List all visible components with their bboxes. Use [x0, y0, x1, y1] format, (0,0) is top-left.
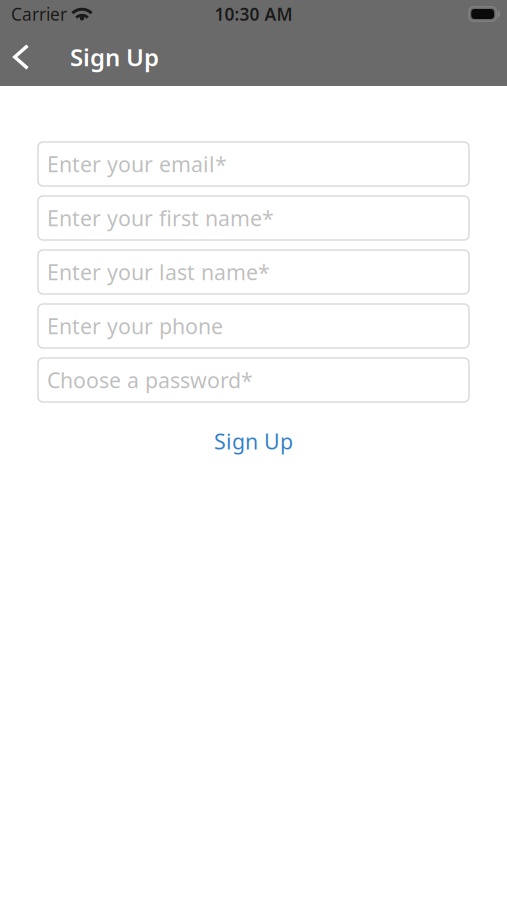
staticText: Sign Up: [70, 41, 159, 73]
button[interactable]: Sign Up: [190, 419, 317, 463]
staticText: Choose a password*: [47, 366, 253, 394]
staticText: Enter your first name*: [47, 204, 274, 232]
staticText: 10:30 AM: [214, 2, 292, 25]
staticText: Carrier: [11, 2, 67, 25]
staticText: Enter your last name*: [47, 258, 270, 286]
button[interactable]: Back: [0, 32, 48, 82]
staticText: Sign Up: [214, 427, 293, 455]
staticText: Enter your phone: [47, 312, 223, 340]
staticText: Enter your email*: [47, 150, 227, 178]
